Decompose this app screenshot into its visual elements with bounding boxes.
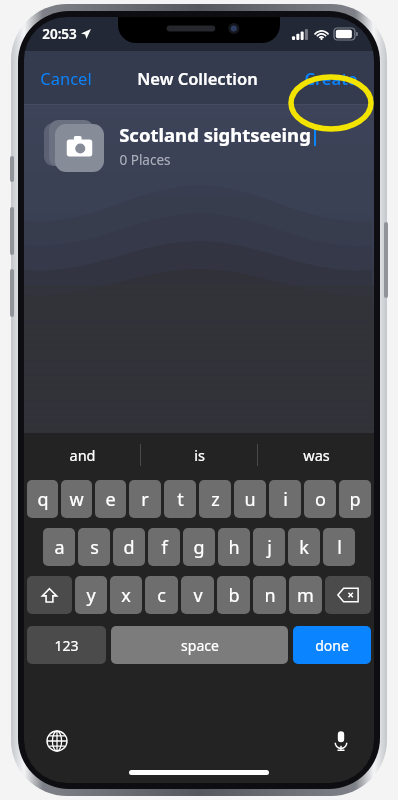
staticText: g: [193, 535, 205, 560]
staticText: Scotland sightseeing: [119, 122, 311, 147]
staticText: z: [211, 487, 220, 512]
button[interactable]: Shift: [27, 576, 72, 614]
button[interactable]: y: [75, 576, 107, 614]
staticText: q: [37, 487, 49, 512]
staticText: r: [141, 487, 149, 512]
button[interactable]: space: [111, 626, 288, 664]
staticText: y: [86, 583, 96, 608]
staticText: done: [315, 636, 349, 655]
staticText: u: [244, 487, 256, 512]
staticText: v: [193, 583, 203, 608]
button[interactable]: t: [164, 480, 196, 518]
button[interactable]: Backspace: [325, 576, 371, 614]
button[interactable]: u: [234, 480, 266, 518]
staticText: t: [177, 487, 184, 512]
button[interactable]: l: [323, 528, 355, 566]
staticText: 20:53: [42, 25, 77, 43]
staticText: and: [69, 445, 96, 465]
staticText: w: [69, 487, 84, 512]
button[interactable]: done: [293, 626, 371, 664]
button[interactable]: is: [141, 433, 257, 477]
staticText: l: [337, 535, 342, 560]
button[interactable]: c: [145, 576, 178, 614]
button[interactable]: was: [258, 433, 374, 477]
staticText: a: [54, 535, 65, 560]
button[interactable]: v: [181, 576, 214, 614]
button[interactable]: b: [217, 576, 250, 614]
button[interactable]: e: [95, 480, 126, 518]
staticText: e: [105, 487, 116, 512]
staticText: k: [299, 535, 309, 560]
button[interactable]: n: [253, 576, 286, 614]
staticText: n: [264, 583, 276, 608]
staticText: o: [315, 487, 326, 512]
staticText: space: [181, 636, 219, 655]
staticText: Cancel: [40, 67, 92, 89]
staticText: d: [123, 535, 135, 560]
button[interactable]: d: [113, 528, 145, 566]
staticText: b: [228, 583, 240, 608]
staticText: was: [303, 445, 330, 465]
button[interactable]: p: [339, 480, 371, 518]
staticText: j: [267, 535, 272, 560]
button[interactable]: o: [304, 480, 336, 518]
button[interactable]: q: [27, 480, 58, 518]
button[interactable]: Change keyboard language: [42, 726, 72, 756]
button[interactable]: a: [43, 528, 75, 566]
staticText: f: [161, 535, 168, 560]
button[interactable]: 123: [27, 626, 106, 664]
staticText: h: [228, 535, 240, 560]
button[interactable]: Cancel: [24, 55, 104, 101]
button[interactable]: and: [24, 433, 140, 477]
button[interactable]: i: [269, 480, 301, 518]
button[interactable]: w: [61, 480, 92, 518]
button[interactable]: Create: [292, 55, 374, 101]
button[interactable]: s: [78, 528, 110, 566]
staticText: 123: [54, 636, 79, 655]
staticText: Create: [304, 67, 358, 89]
staticText: x: [121, 583, 131, 608]
button[interactable]: k: [288, 528, 320, 566]
staticText: 0 Places: [119, 151, 171, 169]
button[interactable]: f: [148, 528, 180, 566]
button[interactable]: x: [110, 576, 142, 614]
staticText: is: [194, 445, 205, 465]
button[interactable]: m: [289, 576, 322, 614]
staticText: m: [297, 583, 314, 608]
button[interactable]: z: [199, 480, 231, 518]
staticText: c: [157, 583, 166, 608]
button[interactable]: Dictation: [326, 726, 356, 756]
staticText: New Collection: [137, 67, 258, 89]
button[interactable]: r: [129, 480, 161, 518]
button[interactable]: g: [183, 528, 215, 566]
staticText: s: [90, 535, 99, 560]
button[interactable]: h: [218, 528, 250, 566]
button[interactable]: j: [253, 528, 285, 566]
staticText: p: [349, 487, 361, 512]
staticText: i: [283, 487, 288, 512]
